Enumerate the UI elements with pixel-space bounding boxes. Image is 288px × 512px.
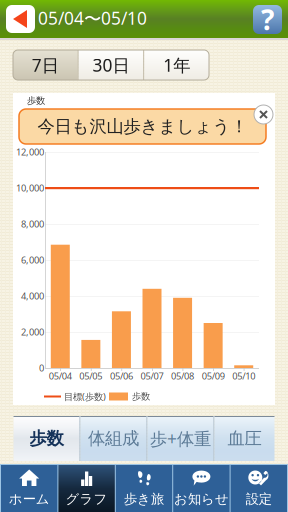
staticText: 歩数 bbox=[29, 428, 63, 449]
staticText: 05/09 bbox=[202, 370, 225, 382]
button[interactable]: Close bbox=[254, 105, 273, 124]
button[interactable]: グラフ bbox=[58, 465, 115, 512]
button[interactable]: 歩+体重 bbox=[147, 416, 213, 461]
staticText: 7日 bbox=[32, 53, 59, 76]
staticText: 歩+体重 bbox=[150, 427, 211, 450]
staticText: お知らせ bbox=[174, 491, 229, 507]
staticText: 血圧 bbox=[227, 428, 261, 449]
staticText: 4,000 bbox=[21, 290, 44, 302]
staticText: 体組成 bbox=[88, 428, 139, 449]
staticText: 6,000 bbox=[21, 254, 44, 266]
staticText: 0 bbox=[39, 362, 44, 374]
button[interactable]: お知らせ bbox=[173, 465, 230, 512]
staticText: 05/05 bbox=[79, 370, 102, 382]
button[interactable]: Back bbox=[6, 5, 35, 33]
button[interactable]: 30日 bbox=[79, 50, 143, 80]
staticText: 05/04〜05/10 bbox=[38, 6, 147, 29]
staticText: ? bbox=[261, 1, 274, 38]
staticText: 05/06 bbox=[110, 370, 133, 382]
button[interactable]: 設定 bbox=[231, 465, 287, 512]
staticText: グラフ bbox=[66, 491, 108, 507]
button[interactable]: 歩き旅 bbox=[116, 465, 172, 512]
staticText: 1年 bbox=[163, 53, 190, 76]
staticText: 8,000 bbox=[21, 218, 44, 230]
button[interactable]: 体組成 bbox=[80, 416, 146, 461]
staticText: 目標(歩数) bbox=[64, 390, 106, 403]
staticText: 05/10 bbox=[232, 370, 255, 382]
staticText: 05/08 bbox=[171, 370, 194, 382]
staticText: 10,000 bbox=[16, 182, 44, 194]
staticText: 30日 bbox=[92, 53, 129, 76]
button[interactable]: ホーム bbox=[1, 465, 57, 512]
staticText: 歩き旅 bbox=[124, 491, 164, 507]
button[interactable]: 血圧 bbox=[214, 416, 274, 461]
staticText: 今日も沢山歩きましょう！ bbox=[37, 116, 247, 137]
button[interactable]: Help bbox=[253, 5, 282, 34]
button[interactable]: 7日 bbox=[13, 50, 78, 80]
button[interactable]: 1年 bbox=[144, 50, 209, 80]
staticText: 歩数 bbox=[132, 391, 150, 402]
staticText: 05/07 bbox=[140, 370, 163, 382]
staticText: 歩数 bbox=[27, 95, 45, 106]
button[interactable]: 歩数 bbox=[13, 416, 79, 461]
staticText: 05/04 bbox=[49, 370, 72, 382]
staticText: 2,000 bbox=[21, 326, 44, 338]
staticText: 設定 bbox=[246, 491, 272, 507]
staticText: ホーム bbox=[9, 491, 50, 507]
staticText: 12,000 bbox=[16, 146, 44, 158]
